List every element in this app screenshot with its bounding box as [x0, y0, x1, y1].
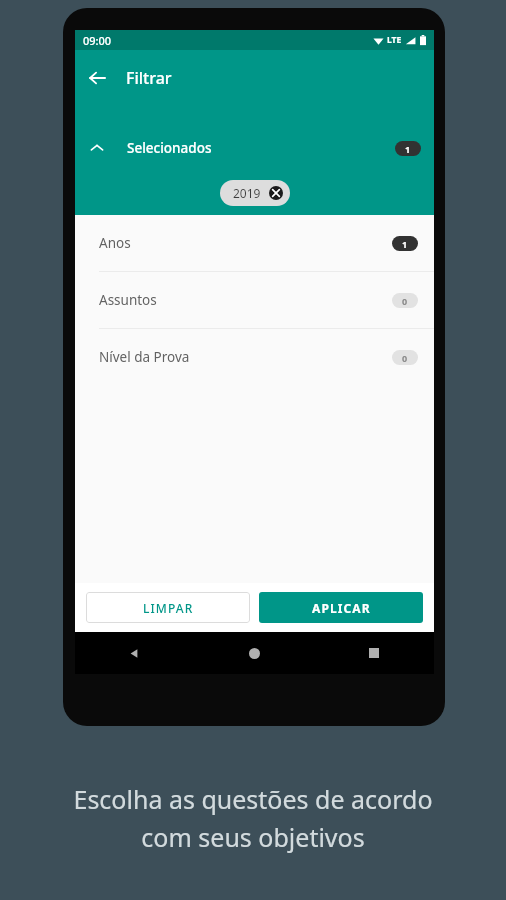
staticText: Filtrar: [126, 67, 172, 89]
button[interactable]: Recentes: [314, 632, 434, 674]
button[interactable]: Anos: [75, 215, 434, 271]
button[interactable]: Assuntos: [75, 272, 434, 328]
staticText: Assuntos: [99, 291, 157, 309]
staticText: Anos: [99, 234, 131, 252]
staticText: 2019: [233, 185, 261, 201]
staticText: APLICAR: [312, 600, 371, 616]
staticText: 1: [405, 143, 411, 155]
button[interactable]: Selecionados: [75, 126, 434, 170]
button[interactable]: APLICAR: [259, 592, 423, 623]
staticText: 1: [402, 238, 408, 250]
button[interactable]: 2019: [220, 180, 290, 206]
button[interactable]: LIMPAR: [86, 592, 250, 623]
button[interactable]: Voltar: [84, 65, 110, 91]
staticText: LIMPAR: [143, 600, 194, 616]
staticText: Nível da Prova: [99, 348, 190, 366]
button[interactable]: Início: [194, 632, 314, 674]
staticText: Selecionados: [127, 139, 212, 157]
staticText: Escolha as questões de acordo: [73, 782, 433, 816]
staticText: 09:00: [83, 33, 112, 48]
button[interactable]: Voltar: [75, 632, 194, 674]
staticText: LTE: [387, 34, 402, 46]
staticText: 0: [402, 295, 408, 307]
button[interactable]: Nível da Prova: [75, 329, 434, 385]
staticText: com seus objetivos: [141, 820, 365, 854]
staticText: 0: [402, 352, 408, 364]
